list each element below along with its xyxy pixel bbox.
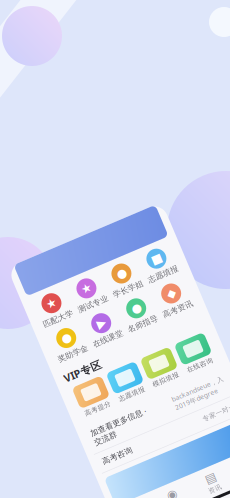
staticText: 测试专业	[108, 285, 140, 295]
button[interactable]: ▤	[143, 489, 185, 498]
staticText: 高考提分	[73, 384, 101, 392]
staticText: ▶	[119, 304, 128, 318]
staticText: 学长学姐	[146, 285, 178, 295]
staticText: 在线课堂	[108, 323, 140, 333]
staticText: ★	[80, 266, 91, 280]
staticText: ●	[157, 266, 167, 280]
staticText: 在线咨询	[184, 384, 212, 392]
staticText: 名师指导	[146, 323, 178, 333]
staticText: 加查看更多信息 · 交流群	[71, 403, 131, 424]
staticText: ●	[81, 304, 91, 318]
staticText: VIP专区	[68, 341, 108, 355]
staticText: 高考咨询	[71, 434, 103, 444]
staticText: 专家一对一	[180, 435, 215, 443]
staticText: 志愿填报	[110, 384, 138, 392]
staticText: ★	[118, 266, 129, 280]
staticText: ○	[201, 489, 211, 498]
button[interactable]: ○	[185, 489, 227, 498]
staticText: 模拟填报	[147, 384, 175, 392]
staticText: backandseue，入2019年degree	[159, 404, 215, 422]
staticText: 匹配大学	[70, 285, 102, 295]
button[interactable]: ◉	[101, 489, 143, 498]
staticText: 志愿填报	[184, 285, 216, 295]
staticText: 奖助学金	[70, 323, 102, 333]
staticText: 高考资讯	[184, 323, 216, 333]
staticText: ▤	[158, 489, 169, 498]
staticText: ●	[157, 304, 167, 318]
